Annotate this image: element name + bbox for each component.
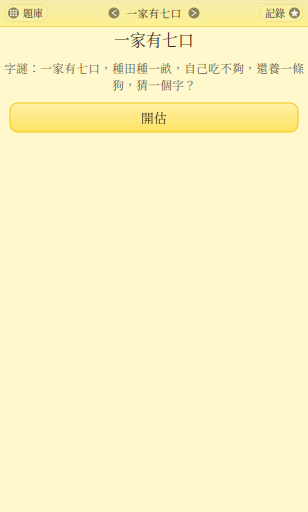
staticText: 開估 [141,108,167,126]
button[interactable]: 記錄 [260,4,303,21]
button[interactable]: Next riddle [186,5,201,20]
button[interactable]: 開估 [0,93,308,132]
button[interactable]: Previous riddle [106,5,121,20]
button[interactable]: 題庫 [5,4,48,21]
staticText: 記錄 [265,6,285,20]
staticText: 一家有七口 [126,5,181,21]
staticText: 一家有七口 [114,28,194,51]
staticText: 題庫 [23,6,43,20]
staticText: 字謎：一家有七口，種田種一畝，自己吃不夠，還養一條狗，猜一個字？ [4,60,304,93]
